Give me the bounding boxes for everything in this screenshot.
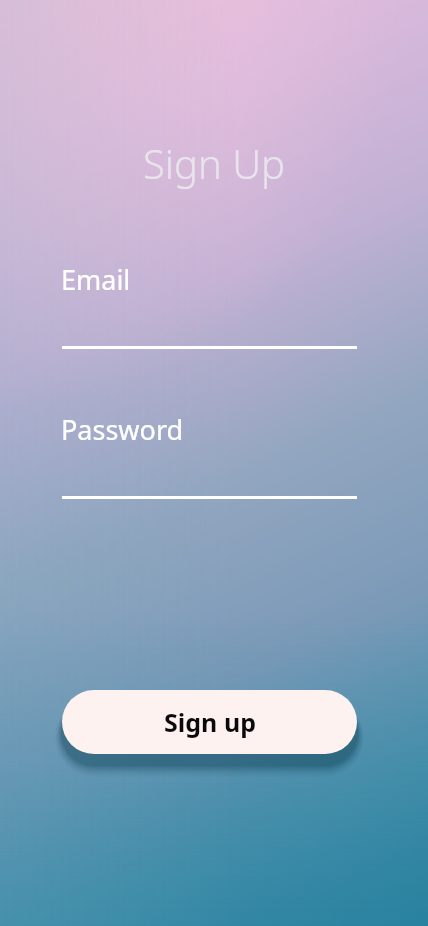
- staticText: Sign up: [164, 705, 256, 739]
- staticText: Sign Up: [0, 136, 428, 190]
- button[interactable]: Sign up: [62, 690, 357, 754]
- button[interactable]: Password: [61, 411, 184, 448]
- button[interactable]: Email: [61, 261, 131, 298]
